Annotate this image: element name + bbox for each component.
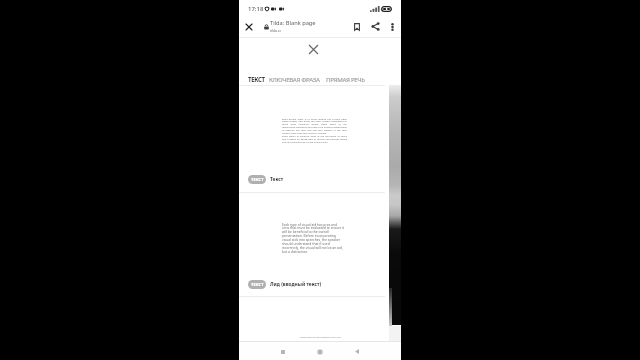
button[interactable]: Back <box>350 345 363 358</box>
button[interactable]: ПРЯМАЯ РЕЧЬ <box>322 72 369 86</box>
staticText: Лид (вводный текст) <box>270 281 322 288</box>
staticText: ТЕКСТ <box>251 282 264 288</box>
button[interactable]: КЛЮЧЕВАЯ ФРАЗА <box>265 72 324 86</box>
staticText: 17:18 <box>248 5 264 13</box>
button[interactable]: Recents <box>276 345 289 358</box>
button[interactable]: ТЕКСТ <box>239 172 401 186</box>
staticText: Текст <box>270 176 284 183</box>
staticText: КЛЮЧЕВАЯ ФРАЗА <box>269 75 320 83</box>
button[interactable]: Share <box>368 19 383 34</box>
button[interactable]: Close <box>243 21 255 33</box>
staticText: Each type of visual aid has pros and con… <box>282 222 345 254</box>
button[interactable]: ТЕКСТ <box>239 277 401 291</box>
button[interactable]: ТЕКСТ <box>244 72 269 86</box>
staticText: Published on the platform 2021-08 <box>300 335 341 338</box>
staticText: ТЕКСТ <box>248 75 265 83</box>
staticText: tilda.cc <box>270 28 282 33</box>
staticText: Blind design order is to avoid getting t… <box>282 117 347 144</box>
button[interactable]: Home <box>313 345 326 358</box>
button[interactable]: Close panel <box>303 39 324 60</box>
button[interactable]: Bookmark <box>349 19 364 34</box>
staticText: Tilda: Blank page <box>270 19 316 27</box>
button[interactable]: More options <box>386 20 399 33</box>
staticText: ТЕКСТ <box>251 177 264 183</box>
staticText: ПРЯМАЯ РЕЧЬ <box>326 75 365 83</box>
